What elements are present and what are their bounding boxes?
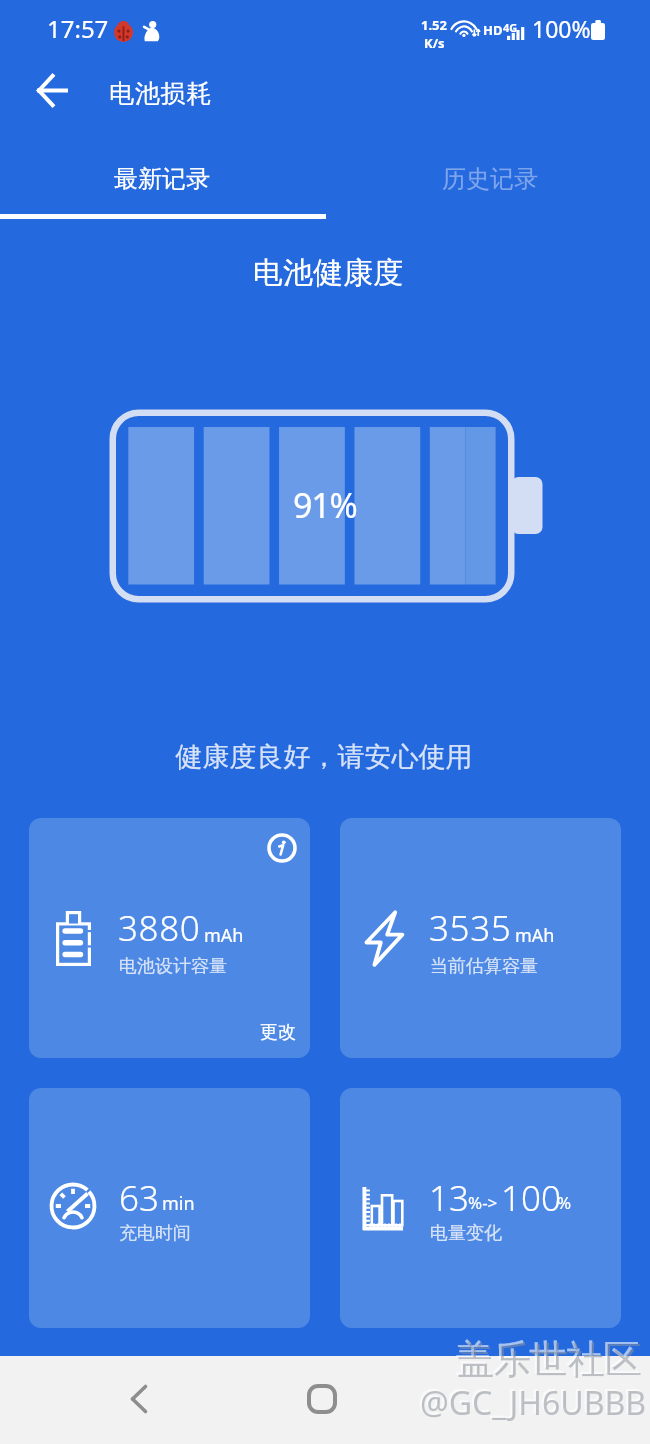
staticText: @GC_JH6UBBB <box>418 1379 645 1423</box>
staticText: 历史记录 <box>442 164 538 194</box>
staticText: 充电时间 <box>119 1222 191 1245</box>
button[interactable]: Back <box>17 61 87 120</box>
staticText: 100 <box>501 1174 561 1222</box>
staticText: 电池设计容量 <box>119 955 227 978</box>
staticText: min <box>162 1191 195 1216</box>
staticText: 4G <box>503 20 518 35</box>
staticText: 3880 <box>118 904 201 952</box>
button[interactable]: Back <box>110 1365 168 1433</box>
staticText: 最新记录 <box>114 164 210 194</box>
button[interactable]: Info <box>257 823 307 873</box>
staticText: 3535 <box>429 904 512 952</box>
button[interactable]: 历史记录 <box>325 120 650 220</box>
staticText: % <box>557 1191 572 1214</box>
staticText: mAh <box>204 923 244 948</box>
staticText: 健康度良好，请安心使用 <box>0 740 649 774</box>
staticText: 电池健康度 <box>3 254 650 292</box>
button[interactable]: 13 <box>340 1088 621 1328</box>
button[interactable]: Recents <box>470 1365 538 1433</box>
button[interactable]: 最新记录 <box>0 120 325 220</box>
button[interactable]: Info <box>29 818 310 1058</box>
staticText: 63 <box>119 1174 159 1222</box>
button[interactable]: Home <box>288 1365 356 1433</box>
staticText: @GC_JH6UBBB <box>420 1381 647 1425</box>
staticText: HD <box>483 21 503 39</box>
staticText: 1.52 <box>421 16 447 34</box>
button[interactable]: 3535 <box>340 818 621 1058</box>
staticText: %-> <box>468 1191 498 1214</box>
staticText: 13 <box>429 1174 469 1222</box>
staticText: 电量变化 <box>430 1222 502 1245</box>
button[interactable]: 更改 <box>249 1011 305 1055</box>
button[interactable]: 63 <box>29 1088 310 1328</box>
staticText: K/s <box>424 34 445 52</box>
staticText: 100% <box>532 13 591 44</box>
staticText: 盖乐世社区 <box>455 1335 640 1382</box>
staticText: 91% <box>293 482 357 528</box>
staticText: 盖乐世社区 <box>457 1337 642 1384</box>
staticText: mAh <box>515 923 555 948</box>
staticText: 电池损耗 <box>109 78 213 109</box>
staticText: 更改 <box>260 1021 296 1044</box>
staticText: 17:57 <box>47 12 109 45</box>
staticText: 当前估算容量 <box>430 955 538 978</box>
